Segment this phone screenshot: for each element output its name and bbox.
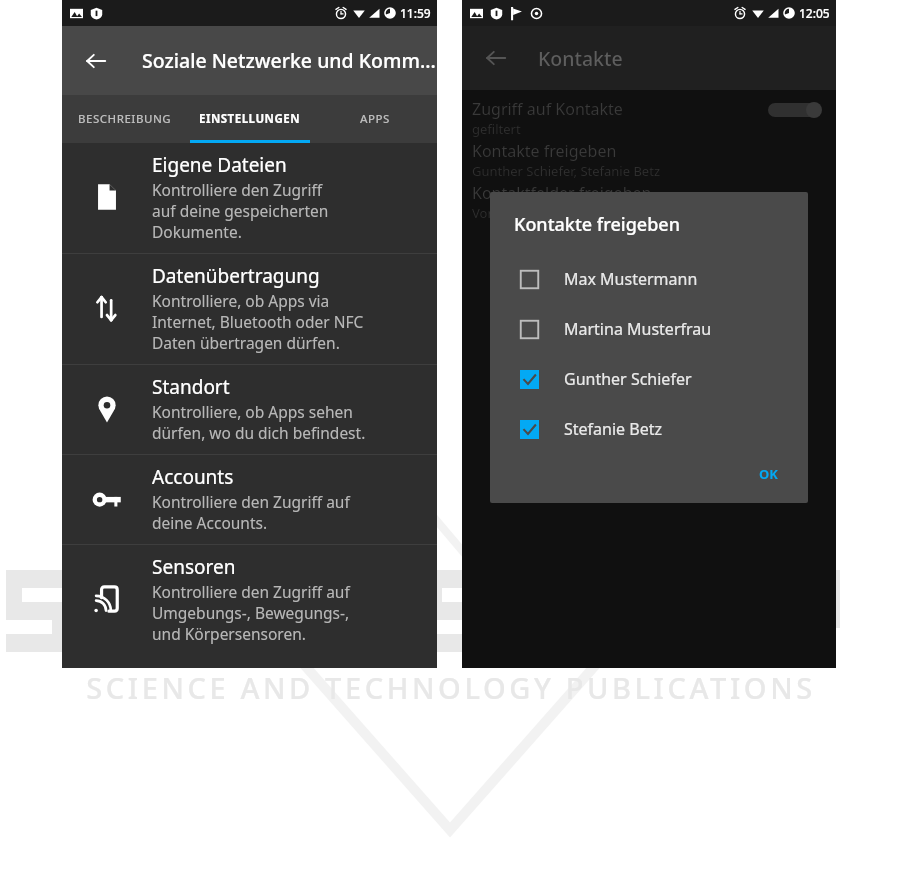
staticText: Martina Musterfrau bbox=[564, 318, 712, 340]
staticText: APPS bbox=[360, 111, 390, 127]
button[interactable]: Stefanie Betz bbox=[490, 404, 808, 454]
button[interactable]: EINSTELLUNGEN bbox=[187, 95, 312, 143]
staticText: Kontaktfelder freigeben bbox=[472, 182, 652, 204]
staticText: Soziale Netzwerke und Komm… bbox=[142, 47, 436, 74]
staticText: Kontakte bbox=[538, 45, 623, 72]
button[interactable]: Zugriff auf Kontakte umschalten bbox=[768, 102, 822, 118]
staticText: und Körpersensoren. bbox=[152, 623, 306, 644]
staticText: BESCHREIBUNG bbox=[78, 111, 172, 127]
button[interactable]: Accounts bbox=[62, 455, 437, 544]
button[interactable]: Zurück bbox=[76, 41, 116, 81]
staticText: Sensoren bbox=[152, 554, 236, 580]
staticText: Kontrolliere den Zugriff auf bbox=[152, 581, 350, 602]
staticText: Gunther Schiefer, Stefanie Betz bbox=[472, 162, 661, 180]
staticText: Standort bbox=[152, 374, 230, 400]
button[interactable]: Martina Musterfrau bbox=[490, 304, 808, 354]
staticText: Internet, Bluetooth oder NFC bbox=[152, 311, 364, 332]
staticText: dürfen, wo du dich befindest. bbox=[152, 422, 366, 443]
staticText: Vorname, Nachname bbox=[472, 204, 601, 222]
staticText: 11:59 bbox=[400, 5, 431, 21]
button[interactable]: Standort bbox=[62, 365, 437, 454]
staticText: Dokumente. bbox=[152, 221, 242, 242]
button[interactable]: Sensoren bbox=[62, 545, 437, 655]
staticText: SCIENCE AND TECHNOLOGY PUBLICATIONS bbox=[86, 668, 816, 706]
staticText: Kontrolliere den Zugriff auf bbox=[152, 491, 350, 512]
staticText: Kontrolliere den Zugriff bbox=[152, 179, 323, 200]
button[interactable]: OK bbox=[749, 459, 788, 489]
button[interactable]: Eigene Dateien bbox=[62, 143, 437, 253]
staticText: auf deine gespeicherten bbox=[152, 200, 329, 221]
staticText: Kontrolliere, ob Apps via bbox=[152, 290, 330, 311]
staticText: Gunther Schiefer bbox=[564, 368, 692, 390]
button[interactable]: BESCHREIBUNG bbox=[62, 95, 187, 143]
staticText: OK bbox=[759, 465, 778, 483]
staticText: Kontrolliere, ob Apps sehen bbox=[152, 401, 353, 422]
button[interactable]: APPS bbox=[312, 95, 437, 143]
staticText: Kontakte freigeben bbox=[472, 140, 617, 162]
staticText: gefiltert bbox=[472, 120, 521, 138]
staticText: Accounts bbox=[152, 464, 234, 490]
staticText: Umgebungs-, Bewegungs-, bbox=[152, 602, 350, 623]
staticText: deine Accounts. bbox=[152, 512, 268, 533]
staticText: Daten übertragen dürfen. bbox=[152, 332, 340, 353]
staticText: Max Mustermann bbox=[564, 268, 698, 290]
staticText: Kontakte freigeben bbox=[514, 212, 680, 237]
staticText: Eigene Dateien bbox=[152, 152, 287, 178]
staticText: Stefanie Betz bbox=[564, 418, 662, 440]
button[interactable]: Zurück bbox=[476, 38, 516, 78]
button[interactable]: Gunther Schiefer bbox=[490, 354, 808, 404]
staticText: Zugriff auf Kontakte bbox=[472, 98, 623, 120]
button[interactable]: Datenübertragung bbox=[62, 254, 437, 364]
button[interactable]: Max Mustermann bbox=[490, 254, 808, 304]
staticText: EINSTELLUNGEN bbox=[199, 111, 301, 127]
staticText: Datenübertragung bbox=[152, 263, 320, 289]
staticText: 12:05 bbox=[799, 5, 830, 21]
